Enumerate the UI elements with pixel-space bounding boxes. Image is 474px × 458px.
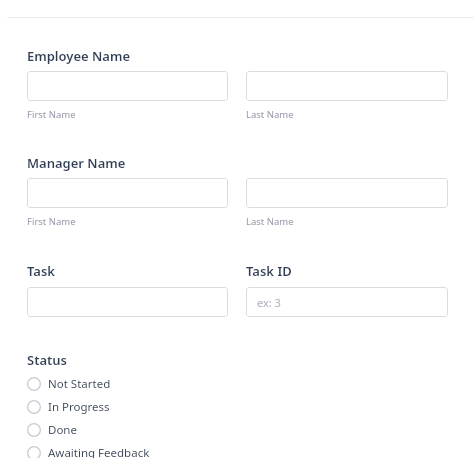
staticText: Status: [27, 351, 68, 369]
staticText: Done: [48, 422, 77, 438]
button[interactable]: Task ID: [246, 287, 448, 317]
button[interactable]: Manager first name: [27, 178, 228, 208]
staticText: First Name: [27, 215, 76, 228]
staticText: Employee Name: [27, 47, 131, 65]
staticText: Not Started: [48, 376, 111, 392]
button[interactable]: Employee first name: [27, 71, 228, 101]
staticText: Task: [27, 262, 56, 280]
staticText: Manager Name: [27, 154, 126, 172]
button[interactable]: Not Started: [27, 372, 227, 395]
staticText: Last Name: [246, 215, 294, 228]
staticText: ex: 3: [257, 295, 281, 310]
button[interactable]: Awaiting Feedback: [27, 441, 227, 458]
button[interactable]: Manager last name: [246, 178, 448, 208]
button[interactable]: Employee last name: [246, 71, 448, 101]
staticText: First Name: [27, 108, 76, 121]
staticText: Last Name: [246, 108, 294, 121]
staticText: In Progress: [48, 399, 110, 415]
button[interactable]: In Progress: [27, 395, 227, 418]
staticText: Task ID: [246, 262, 292, 280]
button[interactable]: Task: [27, 287, 228, 317]
staticText: Awaiting Feedback: [48, 445, 150, 458]
button[interactable]: Done: [27, 418, 227, 441]
